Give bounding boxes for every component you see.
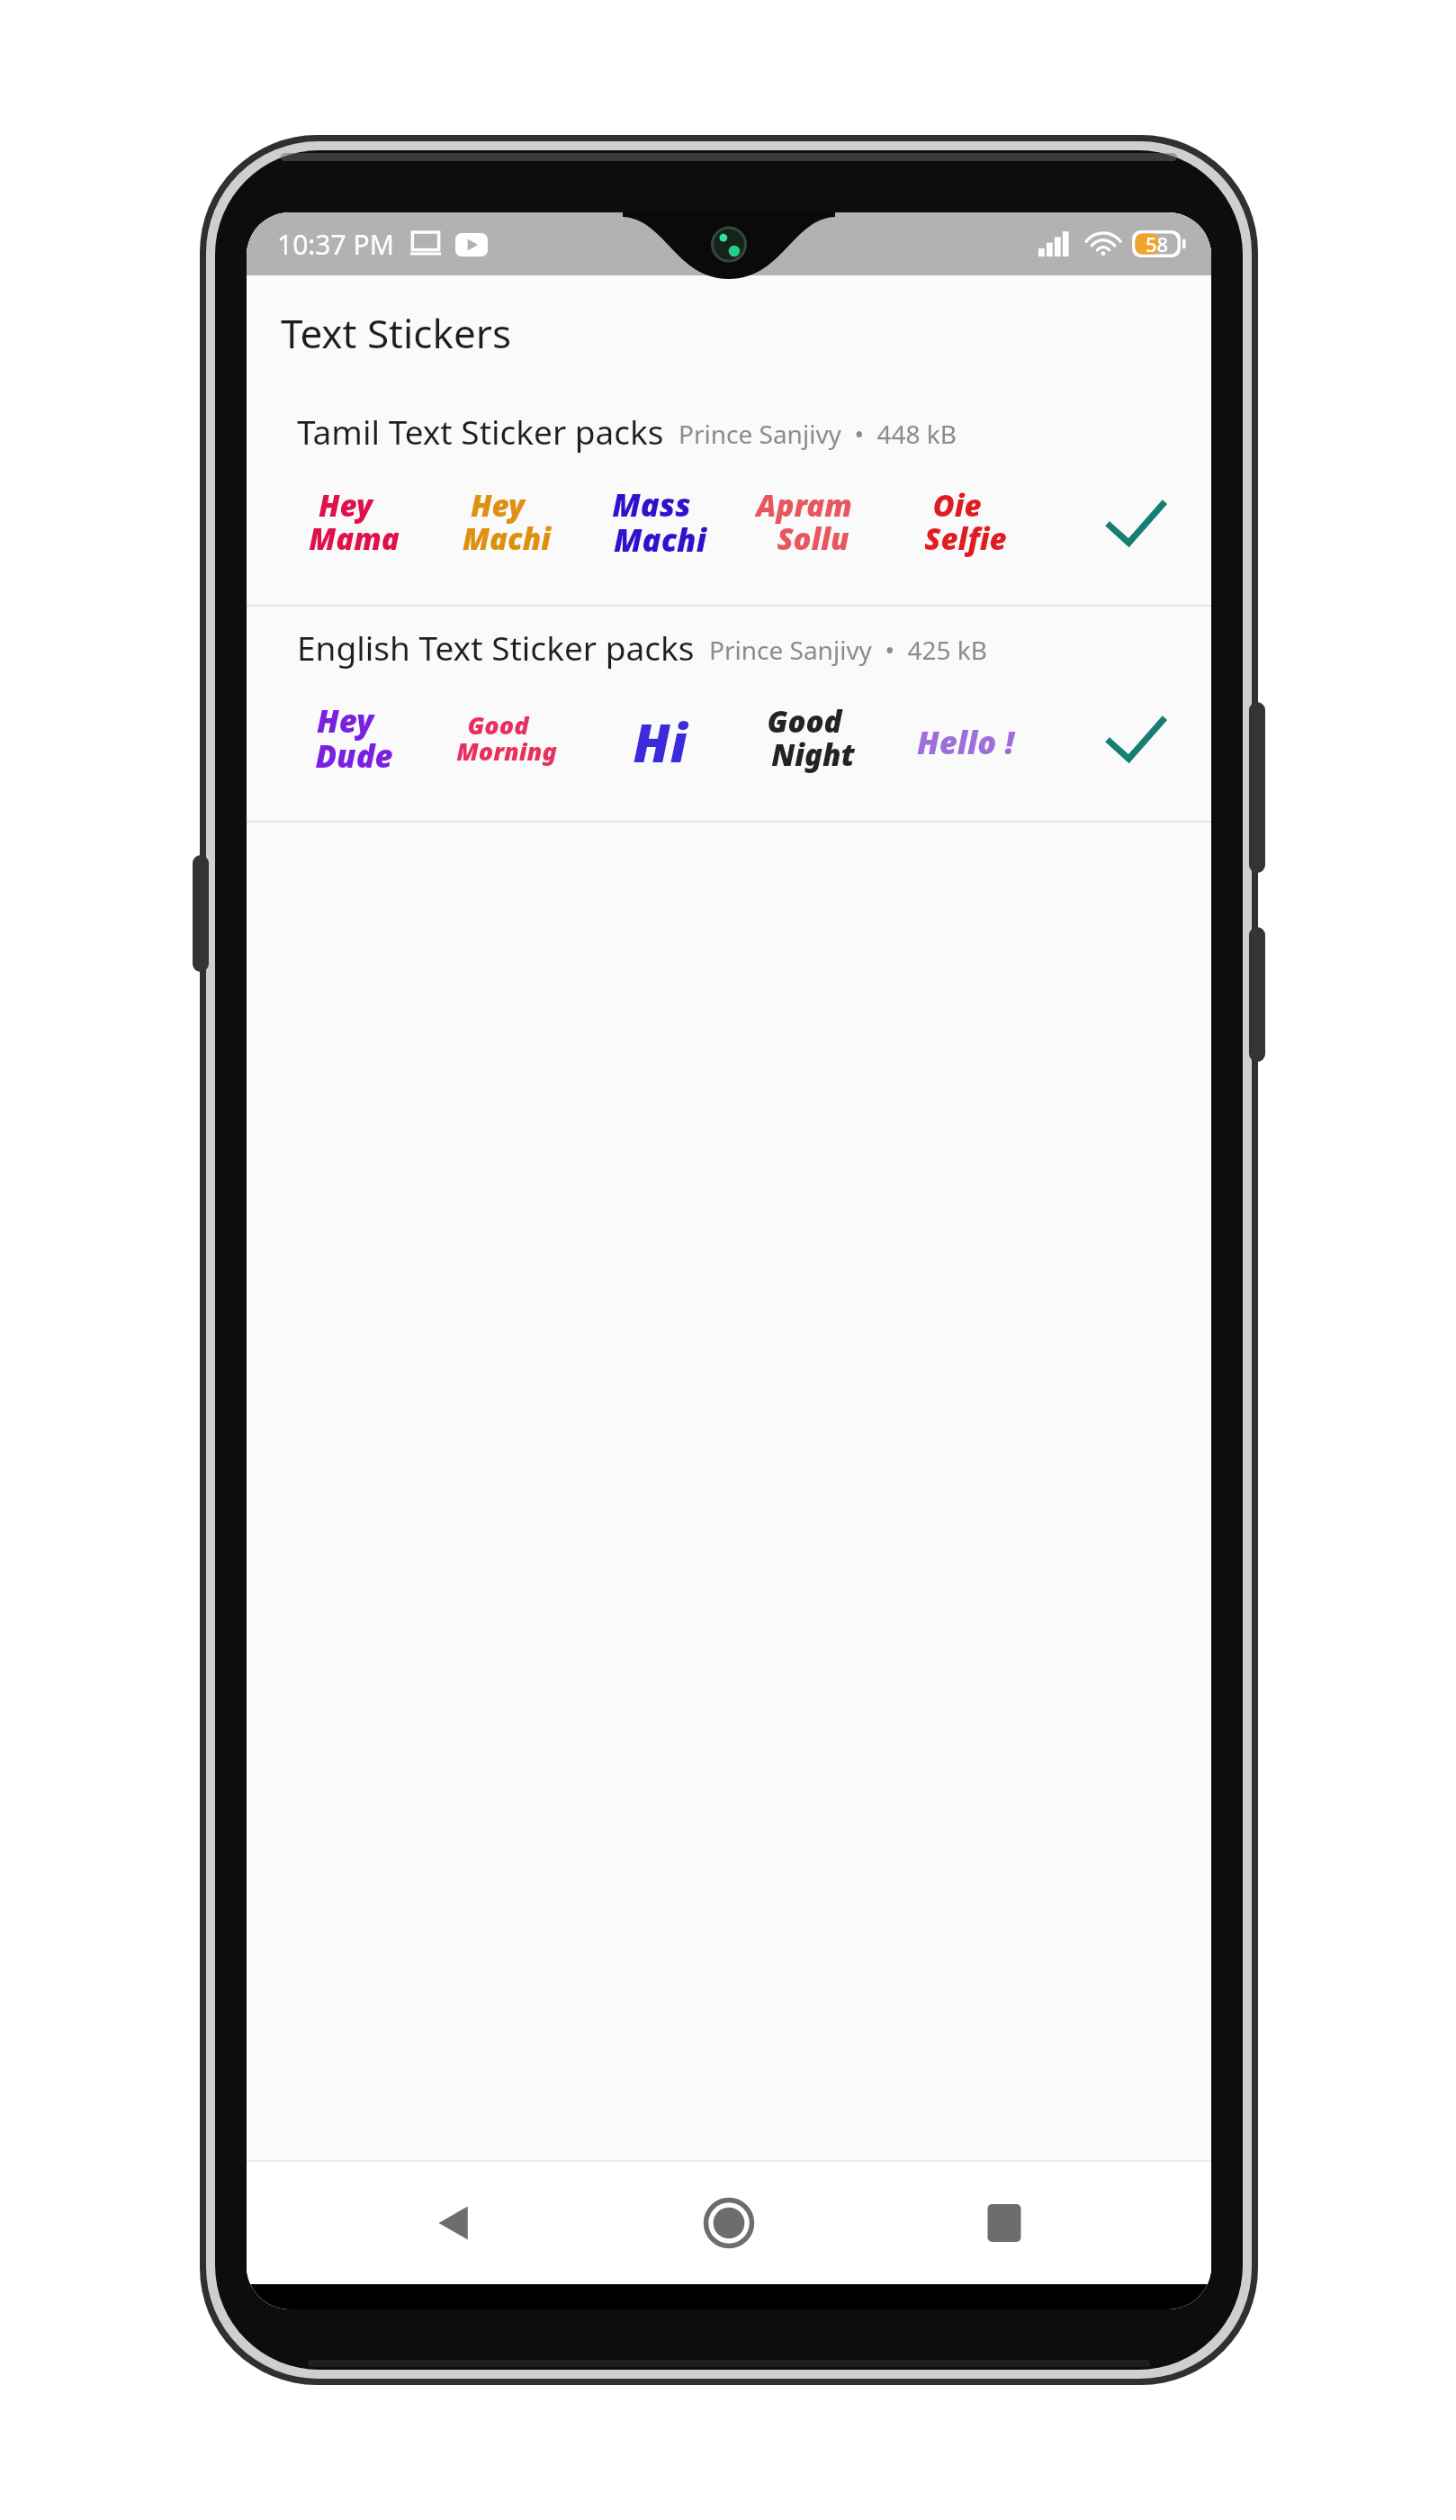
button[interactable]: English Text Sticker packs bbox=[247, 607, 1211, 821]
button[interactable]: Hey Machi bbox=[430, 463, 583, 589]
staticText: Prince Sanjivy • 425 kB bbox=[709, 633, 988, 667]
button[interactable]: Downloaded bbox=[1082, 688, 1190, 796]
staticText: Good bbox=[467, 708, 529, 742]
staticText: Hey bbox=[319, 485, 373, 526]
staticText: Sollu bbox=[777, 518, 849, 559]
staticText: Hi bbox=[633, 706, 688, 778]
button[interactable]: Hey Mama bbox=[277, 463, 430, 589]
staticText: Tamil Text Sticker packs bbox=[297, 409, 664, 454]
staticText: Night bbox=[771, 734, 855, 775]
button[interactable]: Back bbox=[387, 2162, 522, 2284]
button[interactable]: Tamil Text Sticker packs bbox=[247, 391, 1211, 605]
staticText: Dude bbox=[315, 734, 393, 777]
button[interactable]: Apram Sollu bbox=[736, 463, 889, 589]
staticText: Mass bbox=[612, 483, 691, 526]
button[interactable]: Good Night bbox=[736, 679, 889, 805]
button[interactable]: Hello ! bbox=[889, 679, 1042, 805]
staticText: 58 bbox=[1146, 230, 1169, 257]
button[interactable]: Downloaded bbox=[1082, 472, 1190, 580]
button[interactable]: Good Morning bbox=[430, 679, 583, 805]
button[interactable]: Oie Selfie bbox=[889, 463, 1042, 589]
staticText: Morning bbox=[456, 734, 557, 768]
staticText: Hello ! bbox=[917, 721, 1014, 763]
staticText: Machi bbox=[614, 518, 706, 561]
staticText: Good bbox=[767, 701, 842, 742]
staticText: Hey bbox=[471, 485, 525, 526]
staticText: Apram bbox=[756, 485, 852, 526]
staticText: Hey bbox=[317, 699, 373, 742]
button[interactable]: Hi bbox=[583, 679, 736, 805]
button[interactable]: Home bbox=[661, 2162, 796, 2284]
staticText: Oie bbox=[932, 485, 982, 526]
staticText: Selfie bbox=[924, 518, 1007, 559]
button[interactable]: Hey Dude bbox=[277, 679, 430, 805]
button[interactable]: Recents bbox=[937, 2162, 1072, 2284]
staticText: 10:37 PM bbox=[277, 226, 394, 263]
staticText: Prince Sanjivy • 448 kB bbox=[679, 417, 957, 451]
staticText: Text Stickers bbox=[281, 306, 511, 360]
button[interactable]: Mass Machi bbox=[583, 463, 736, 589]
staticText: Machi bbox=[463, 518, 551, 559]
staticText: English Text Sticker packs bbox=[297, 625, 695, 670]
staticText: Mama bbox=[309, 518, 400, 559]
